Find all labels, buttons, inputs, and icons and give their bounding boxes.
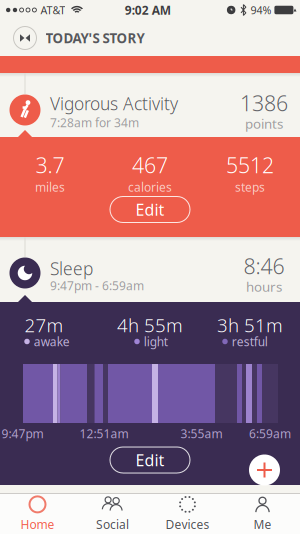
staticText: AT&T (40, 3, 65, 17)
button[interactable]: Edit (110, 196, 190, 222)
button[interactable]: Devices (150, 495, 225, 532)
staticText: 1386 (240, 89, 288, 117)
button[interactable]: Edit (110, 447, 190, 473)
staticText: 3.7 (35, 151, 64, 179)
staticText: 9:47pm (1, 425, 43, 441)
staticText: 27m (24, 313, 63, 337)
staticText: 3:55am (180, 425, 222, 441)
staticText: awake (34, 333, 70, 349)
staticText: Devices (165, 516, 209, 532)
staticText: 5512 (226, 151, 274, 179)
button[interactable] (249, 454, 280, 485)
button[interactable]: Vigorous Activity (0, 94, 300, 130)
staticText: 94% (250, 3, 271, 17)
staticText: 467 (132, 151, 168, 179)
staticText: Edit (135, 199, 164, 220)
button[interactable]: Me (225, 495, 300, 532)
staticText: 6:59am (249, 425, 291, 441)
staticText: light (144, 333, 168, 349)
staticText: Home (20, 516, 54, 532)
staticText: 9:47pm - 6:59am (50, 277, 144, 293)
staticText: steps (235, 179, 265, 195)
staticText: restful (232, 333, 268, 349)
staticText: 9:02 AM (125, 2, 171, 18)
staticText: points (245, 115, 283, 132)
button[interactable]: Home (0, 495, 75, 532)
staticText: 3h 51m (217, 313, 283, 337)
staticText: calories (128, 179, 172, 195)
staticText: Sleep (50, 257, 93, 280)
staticText: miles (35, 179, 65, 195)
staticText: 8:46 (243, 252, 284, 280)
staticText: Me (253, 516, 271, 532)
staticText: 7:28am for 34m (50, 114, 139, 130)
staticText: Vigorous Activity (50, 92, 178, 115)
button[interactable]: Social (75, 495, 150, 532)
staticText: hours (246, 278, 282, 295)
staticText: TODAY'S STORY (45, 29, 144, 47)
staticText: Edit (135, 449, 164, 471)
button[interactable]: Sleep (0, 257, 300, 295)
staticText: 4h 55m (117, 313, 183, 337)
staticText: Social (96, 516, 129, 532)
staticText: 12:51am (79, 425, 128, 441)
